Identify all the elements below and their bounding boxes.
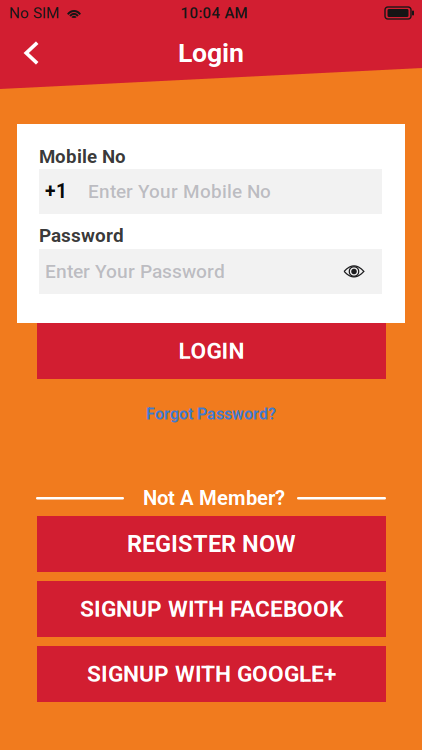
staticText: No SIM [9, 4, 59, 22]
button[interactable]: SIGNUP WITH FACEBOOK [37, 581, 386, 637]
staticText: Enter Your Mobile No [88, 180, 271, 203]
staticText: Forgot Password? [146, 405, 276, 423]
button[interactable]: Back [0, 31, 56, 75]
button[interactable]: LOGIN [37, 323, 386, 379]
staticText: Login [178, 37, 244, 69]
staticText: SIGNUP WITH GOOGLE+ [87, 661, 336, 687]
button[interactable]: SIGNUP WITH GOOGLE+ [37, 646, 386, 702]
button[interactable]: REGISTER NOW [37, 516, 386, 572]
staticText: +1 [45, 180, 67, 203]
staticText: Enter Your Password [45, 260, 225, 283]
staticText: Mobile No [39, 146, 126, 167]
staticText: LOGIN [178, 338, 244, 364]
staticText: Not A Member? [143, 486, 285, 510]
button[interactable]: Forgot Password? [0, 403, 422, 425]
button[interactable]: Show password [326, 249, 382, 294]
staticText: REGISTER NOW [127, 530, 296, 558]
staticText: Password [39, 224, 124, 247]
staticText: 10:04 AM [180, 4, 247, 22]
staticText: SIGNUP WITH FACEBOOK [80, 596, 343, 622]
